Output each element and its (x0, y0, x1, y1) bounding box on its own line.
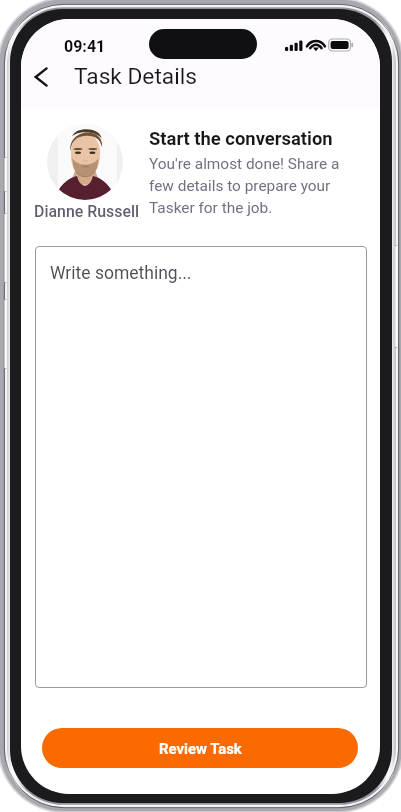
staticText: Review Task (159, 740, 242, 757)
button[interactable]: Write something... (35, 246, 367, 688)
staticText: You're almost done! Share a few details … (149, 155, 345, 217)
staticText: Task Details (74, 63, 197, 90)
staticText: Dianne Russell (34, 202, 140, 221)
staticText: Write something... (50, 263, 192, 284)
staticText: 09:41 (64, 37, 106, 56)
button[interactable]: Back (21, 57, 61, 97)
staticText: Start the conversation (149, 128, 333, 150)
button[interactable]: Review Task (42, 728, 358, 768)
